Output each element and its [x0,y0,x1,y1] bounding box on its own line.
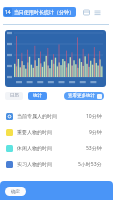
button[interactable]: 重要人物的时间 [0,124,113,140]
staticText: 统计 [33,93,42,99]
staticText: 日历 [10,93,19,99]
staticText: 休闲人物的时间 [17,145,52,151]
button[interactable]: 14 [3,7,76,17]
staticText: 确定 [11,189,20,195]
staticText: 当日使用时长统计（分钟） [14,9,74,15]
button[interactable]: Calendar [83,9,90,16]
button[interactable]: 当前专属人的时间 [0,108,113,124]
staticText: 重要人物的时间 [17,129,52,135]
staticText: 查看更多统计 [68,93,95,99]
staticText: 53分钟 [86,145,102,152]
button[interactable]: 实习人物的时间 [0,156,113,172]
button[interactable]: 查看更多统计 [64,92,104,100]
staticText: 实习人物的时间 [17,161,52,167]
staticText: 5小时53分 [78,161,102,168]
button[interactable]: 统计 [28,92,47,100]
staticText: 14 [5,9,11,16]
button[interactable]: 确定 [5,187,26,196]
staticText: 当前专属人的时间 [17,113,57,119]
staticText: 9分钟 [89,129,102,136]
staticText: 10分钟 [86,113,102,120]
button[interactable]: 休闲人物的时间 [0,140,113,156]
button[interactable]: 日历 [5,92,23,100]
button[interactable]: Menu [94,9,101,16]
